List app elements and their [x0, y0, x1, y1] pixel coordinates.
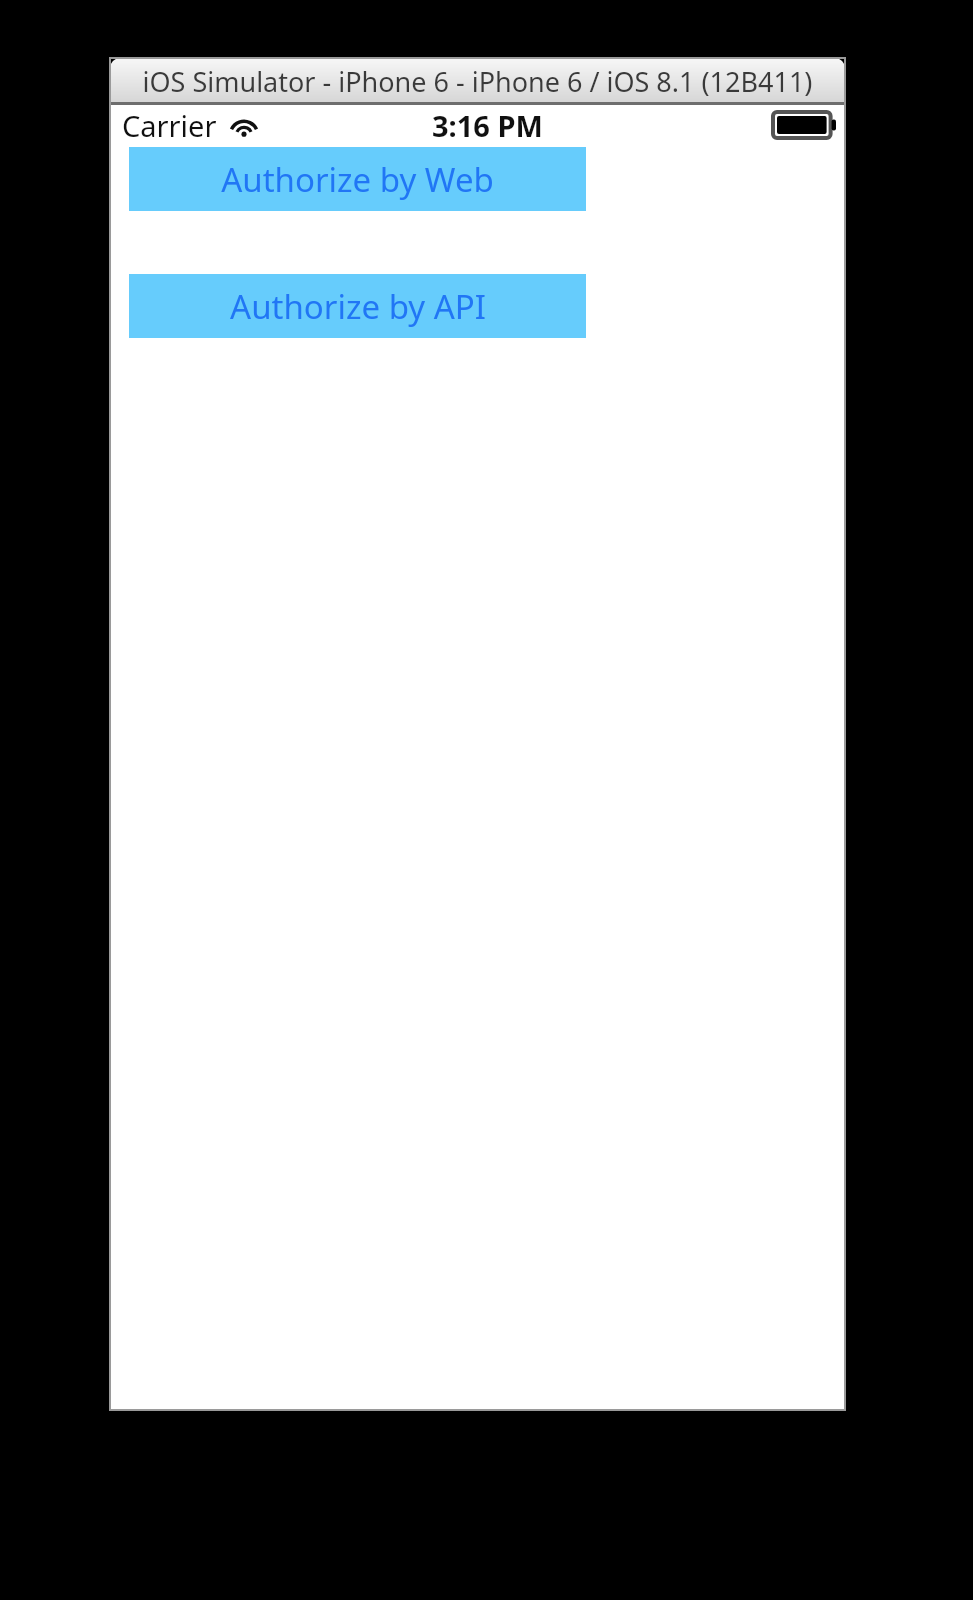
button[interactable]: Authorize by API — [129, 274, 586, 338]
button[interactable]: Authorize by Web — [129, 147, 586, 211]
staticText: 3:16 PM — [432, 106, 543, 145]
staticText: Authorize by API — [230, 284, 486, 329]
staticText: Authorize by Web — [221, 157, 494, 202]
staticText: iOS Simulator - iPhone 6 - iPhone 6 / iO… — [110, 63, 845, 100]
other: Wi-Fi signal — [229, 114, 259, 138]
staticText: Carrier — [122, 106, 217, 145]
other: Battery full — [773, 112, 837, 138]
